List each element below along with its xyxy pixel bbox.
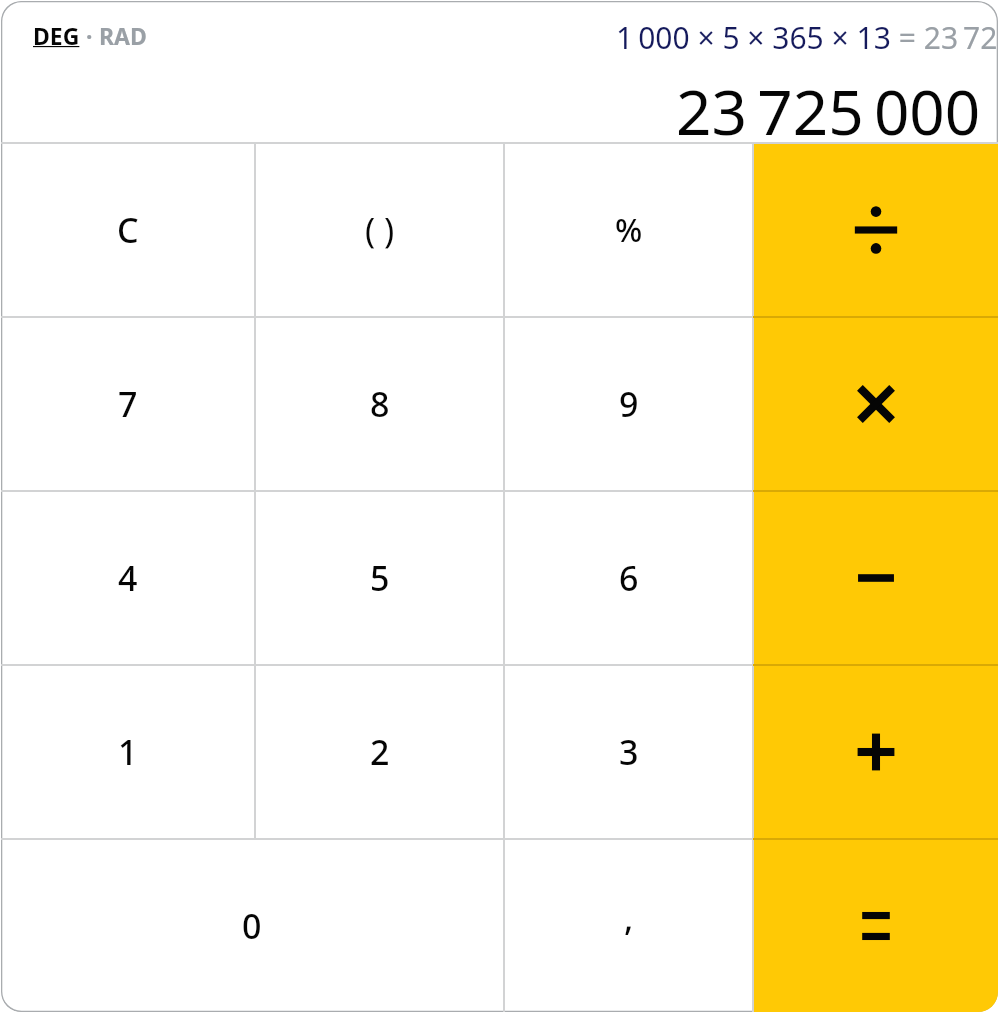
button[interactable]: Divide: [754, 144, 998, 316]
staticText: ,: [624, 895, 634, 941]
button[interactable]: C: [1, 144, 254, 316]
button[interactable]: 1: [1, 666, 254, 838]
button[interactable]: 2: [256, 666, 503, 838]
staticText: RAD: [99, 20, 147, 51]
button[interactable]: 9: [505, 318, 752, 490]
button[interactable]: 5: [256, 492, 503, 664]
button[interactable]: DEG: [33, 20, 80, 51]
button[interactable]: Equals: [754, 840, 998, 1012]
staticText: 0: [242, 903, 262, 949]
staticText: %: [615, 208, 643, 252]
button[interactable]: 3: [505, 666, 752, 838]
button[interactable]: 6: [505, 492, 752, 664]
staticText: ·: [80, 20, 99, 51]
staticText: C: [117, 207, 139, 253]
staticText: ( ): [365, 207, 395, 253]
staticText: 6: [619, 555, 639, 601]
button[interactable]: ( ): [256, 144, 503, 316]
staticText: 1 000 × 5 × 365 × 13: [616, 17, 891, 58]
staticText: 4: [118, 555, 138, 601]
button[interactable]: Add: [754, 666, 998, 838]
staticText: 9: [619, 381, 639, 427]
button[interactable]: RAD: [99, 20, 147, 51]
button[interactable]: 8: [256, 318, 503, 490]
staticText: 7: [118, 381, 138, 427]
staticText: DEG: [33, 20, 80, 51]
staticText: = 23 72: [891, 17, 998, 58]
button[interactable]: Subtract: [754, 492, 998, 664]
button[interactable]: 4: [1, 492, 254, 664]
staticText: 23 725 000: [676, 69, 981, 153]
button[interactable]: 0: [1, 840, 503, 1012]
button[interactable]: %: [505, 144, 752, 316]
staticText: 1: [118, 729, 138, 775]
staticText: 3: [619, 729, 639, 775]
staticText: 2: [370, 729, 390, 775]
button[interactable]: ,: [505, 840, 752, 1012]
staticText: 8: [370, 381, 390, 427]
button[interactable]: Multiply: [754, 318, 998, 490]
staticText: 5: [370, 555, 390, 601]
button[interactable]: 7: [1, 318, 254, 490]
